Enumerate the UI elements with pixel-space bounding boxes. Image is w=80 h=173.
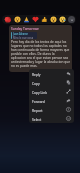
button[interactable]: More reactions <box>68 16 75 23</box>
staticText: Reply <box>32 72 41 76</box>
staticText: Forward <box>32 99 45 103</box>
button[interactable]: Thumbs up <box>40 15 49 24</box>
staticText: Pero hoy dia de los textos de aqui los l… <box>11 40 70 68</box>
staticText: Sunday Tomorrow <box>11 27 39 31</box>
staticText: Mira lo que pasa <box>13 36 34 39</box>
button[interactable]: Smile <box>12 15 22 24</box>
button[interactable]: Copy <box>29 78 74 87</box>
button[interactable]: Laugh <box>49 15 58 24</box>
button[interactable]: Cry <box>58 15 67 24</box>
button[interactable]: Report <box>29 105 74 114</box>
staticText: Report <box>32 108 43 112</box>
staticText: Copy <box>32 81 40 85</box>
button[interactable]: Heart <box>31 15 40 24</box>
button[interactable]: Reply <box>29 69 74 78</box>
staticText: Select <box>32 117 42 121</box>
button[interactable]: Select <box>29 114 74 123</box>
staticText: 11:45 <box>63 68 70 71</box>
button[interactable]: 100 <box>2 15 12 24</box>
button[interactable]: Forward <box>29 96 74 105</box>
staticText: Juan Alvarez <box>13 32 28 36</box>
button[interactable]: Copy Link <box>29 87 74 96</box>
staticText: Copy Link <box>32 90 47 94</box>
button[interactable]: Pray <box>22 15 31 24</box>
